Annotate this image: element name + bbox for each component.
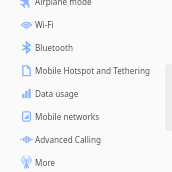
other: Airplane mode [20,0,33,8]
staticText: Mobile networks [35,111,100,122]
button[interactable]: Airplane mode [0,0,172,13]
other: Advanced Calling [20,133,33,146]
button[interactable]: Bluetooth [0,36,172,59]
staticText: Wi-Fi [35,19,54,30]
button[interactable]: Data usage [0,82,172,105]
button[interactable]: Mobile networks [0,105,172,128]
other: Mobile Hotspot and Tethering [20,64,33,77]
staticText: Mobile Hotspot and Tethering [35,65,150,76]
button[interactable]: Mobile Hotspot and Tethering [0,59,172,82]
staticText: Advanced Calling [35,134,101,145]
other: Mobile networks [20,110,33,123]
button[interactable]: Wi-Fi [0,13,172,36]
staticText: Data usage [35,88,79,99]
staticText: Bluetooth [35,42,73,53]
other: Data usage [20,87,33,100]
staticText: Airplane mode [35,0,92,7]
button[interactable]: More [0,151,172,172]
other: Wi-Fi [20,18,33,31]
other: Bluetooth [20,41,33,54]
button[interactable]: Advanced Calling [0,128,172,151]
other: More [20,156,33,169]
staticText: More [35,157,56,168]
